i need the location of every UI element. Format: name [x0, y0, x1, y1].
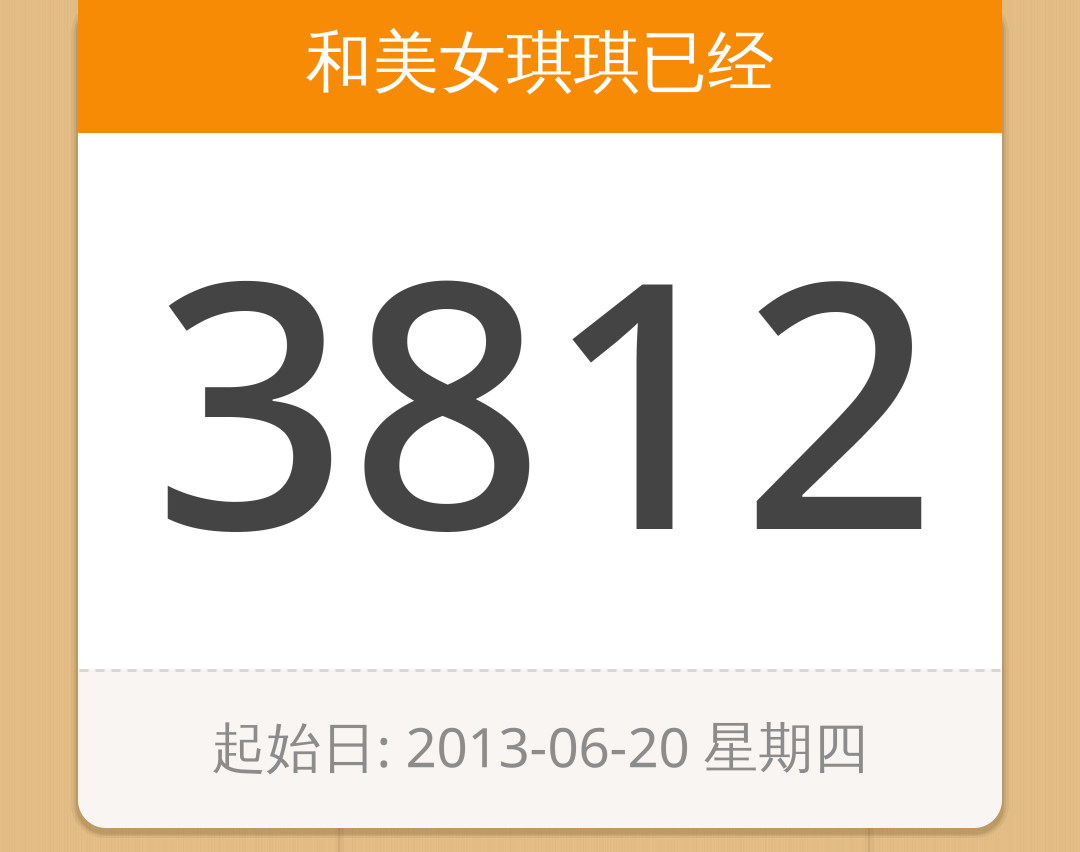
staticText: 和美女琪琪已经	[305, 22, 774, 103]
button[interactable]: 和美女琪琪已经	[78, 0, 1002, 828]
staticText: 3812	[153, 168, 937, 623]
staticText: 起始日: 2013-06-20 星期四	[211, 710, 868, 782]
